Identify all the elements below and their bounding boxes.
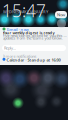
- staticText: Gmail · now: [6, 27, 28, 32]
- staticText: Now: [57, 12, 65, 17]
- button[interactable]: Reply…: [2, 45, 66, 51]
- staticText: WEDNESDAY 8 JANUARY: [3, 9, 48, 14]
- staticText: updates from the teams you follow.: [2, 35, 62, 41]
- staticText: 9 more notifications: [2, 54, 36, 59]
- staticText: 15:47: [2, 0, 46, 22]
- staticText: Calendar · Standup at 16:00: [6, 57, 60, 62]
- button[interactable]: Profile: [57, 19, 66, 28]
- staticText: Your weekly digest is ready: [2, 30, 54, 35]
- staticText: Reply…: [4, 45, 16, 51]
- button[interactable]: Now: [55, 11, 67, 18]
- staticText: Five new stories picked for you this wee…: [2, 33, 68, 38]
